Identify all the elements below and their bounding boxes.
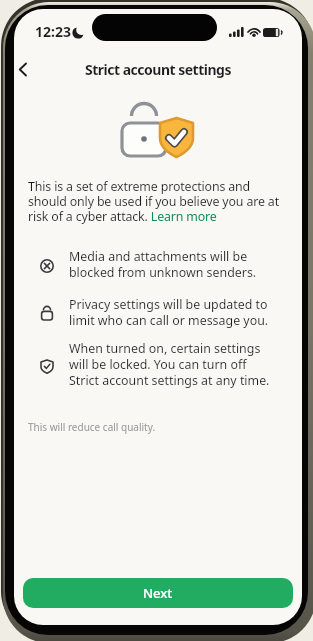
staticText: Strict account settings <box>14 60 302 79</box>
staticText: Privacy settings will be updated to limi… <box>69 296 269 329</box>
button[interactable] <box>160 210 220 227</box>
button[interactable] <box>18 62 28 77</box>
staticText: When turned on, certain settings will be… <box>69 340 270 389</box>
staticText: Media and attachments will be blocked fr… <box>69 248 257 281</box>
staticText: This is a set of extreme protections and… <box>28 178 279 224</box>
button[interactable]: Next <box>23 578 293 608</box>
staticText: This will reduce call quality. <box>28 420 156 434</box>
staticText: Next <box>143 584 173 602</box>
staticText: 12:23 <box>35 22 71 41</box>
